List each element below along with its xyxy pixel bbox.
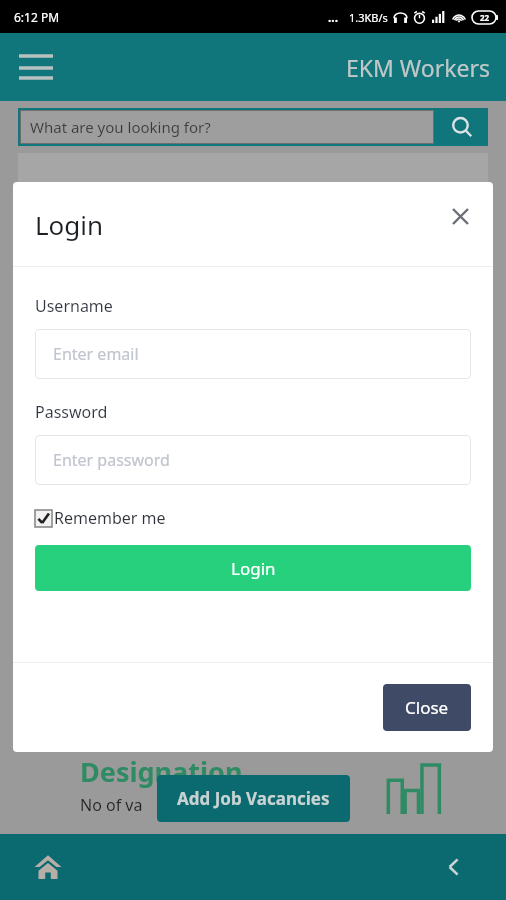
button[interactable]: Home xyxy=(26,845,70,889)
button[interactable]: Close dialog xyxy=(441,197,479,235)
button[interactable]: What are you looking for? xyxy=(20,110,434,144)
staticText: Enter email xyxy=(53,343,139,365)
staticText: No of va xyxy=(80,794,143,816)
staticText: Login xyxy=(231,557,276,580)
button[interactable]: Add Job Vacancies xyxy=(157,775,350,822)
button[interactable]: Enter password xyxy=(35,435,471,485)
button[interactable]: Enter email xyxy=(35,329,471,379)
staticText: Designation xyxy=(80,753,243,790)
staticText: EKM Workers xyxy=(346,52,490,83)
staticText: Enter password xyxy=(53,449,170,471)
button[interactable]: Login xyxy=(35,545,471,591)
staticText: Remember me xyxy=(54,507,166,529)
staticText: Close xyxy=(405,696,449,719)
staticText: Add Job Vacancies xyxy=(177,787,330,810)
staticText: 22 xyxy=(480,12,490,23)
button[interactable]: Open navigation menu xyxy=(12,43,60,91)
button[interactable]: Remember me xyxy=(35,507,166,529)
staticText: 1.3KB/s xyxy=(349,10,388,25)
staticText: Login xyxy=(35,207,104,242)
button[interactable]: Back xyxy=(434,847,474,887)
staticText: What are you looking for? xyxy=(30,117,211,137)
button[interactable]: Close xyxy=(383,684,471,731)
staticText: Password xyxy=(35,401,108,423)
staticText: Username xyxy=(35,295,113,317)
staticText: 6:12 PM xyxy=(14,9,60,25)
button[interactable]: Search xyxy=(436,108,488,146)
staticText: ... xyxy=(328,9,339,25)
